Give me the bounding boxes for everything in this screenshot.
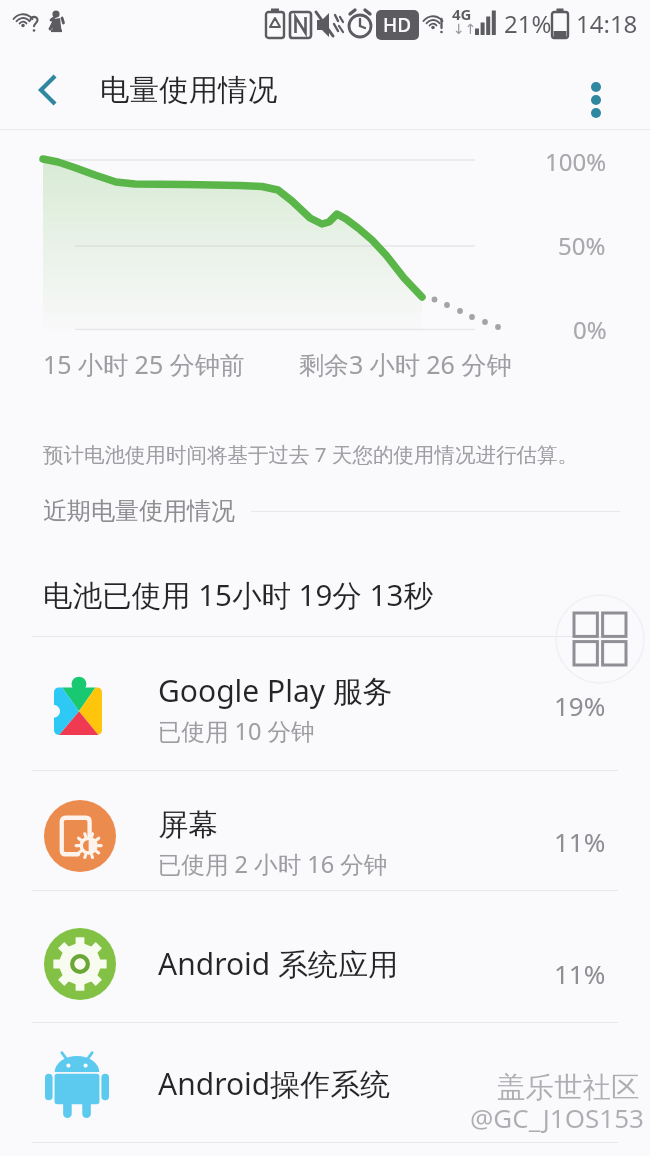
staticText: 近期电量使用情况 [43,496,235,526]
staticText: ↓↑ [453,21,477,37]
staticText: HD [383,12,412,38]
button[interactable]: Apps grid [555,594,645,684]
staticText: 预计电池使用时间将基于过去 7 天您的使用情况进行估算。 [43,440,578,468]
staticText: 14:18 [576,7,638,40]
staticText: 11% [554,956,606,991]
button[interactable]: Google Play 服务 [0,656,650,770]
staticText: 电量使用情况 [100,72,277,109]
button[interactable]: Android操作系统 [0,1033,650,1145]
staticText: 15 小时 25 分钟前 [43,347,245,381]
staticText: 屏幕 [158,806,218,844]
staticText: 11% [554,824,606,859]
staticText: 21% [504,7,552,40]
staticText: Google Play 服务 [158,670,393,711]
button[interactable]: 屏幕 [0,792,650,892]
staticText: 100% [545,145,607,178]
staticText: 已使用 2 小时 16 分钟 [158,848,388,880]
staticText: Android 系统应用 [158,943,399,984]
button[interactable]: More options [576,65,616,105]
staticText: Android操作系统 [158,1063,391,1104]
staticText: 50% [558,229,606,262]
staticText: 已使用 10 分钟 [158,715,315,747]
staticText: 19% [554,688,606,723]
staticText: 盖乐世社区 [497,1070,640,1106]
staticText: @GC_J1OS153 [470,1100,644,1135]
staticText: 4G [452,4,472,24]
staticText: 剩余3 小时 26 分钟 [299,347,512,381]
staticText: 电池已使用 15小时 19分 13秒 [43,574,433,614]
staticText: 0% [573,313,607,346]
button[interactable]: Android 系统应用 [0,913,650,1025]
button[interactable]: Back [26,68,70,112]
